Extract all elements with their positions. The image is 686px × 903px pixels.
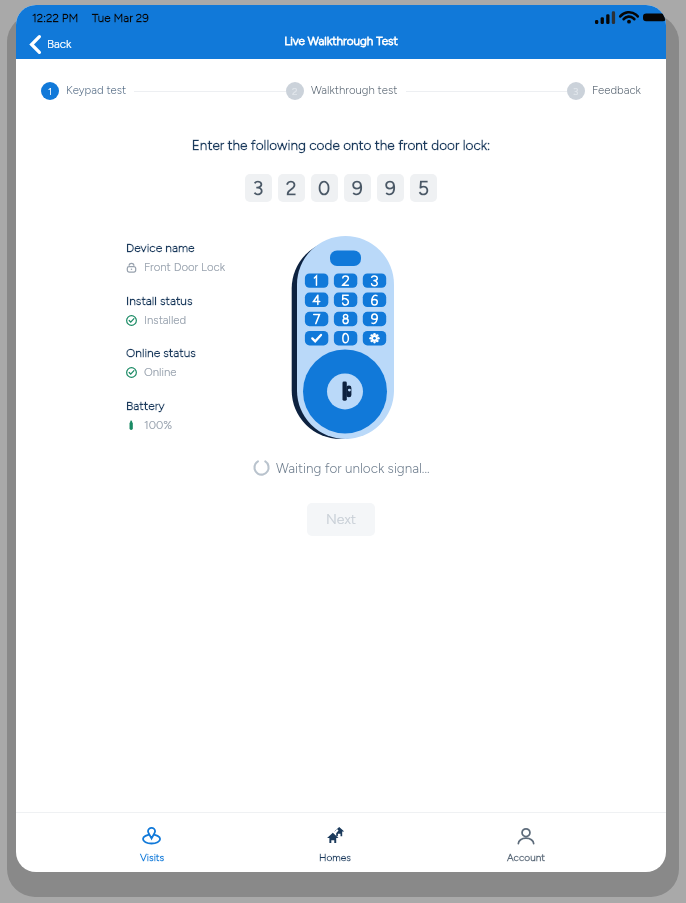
staticText: 3	[573, 85, 579, 97]
staticText: Front Door Lock	[144, 260, 225, 274]
staticText: Tue Mar 29	[92, 11, 149, 25]
staticText: Back	[47, 37, 72, 51]
button[interactable]: 2	[286, 79, 399, 100]
button[interactable]: Account	[496, 813, 556, 872]
staticText: Installed	[144, 313, 187, 327]
staticText: Device name	[126, 241, 195, 255]
staticText: Next	[326, 511, 356, 528]
button[interactable]: 3	[567, 79, 643, 100]
staticText: 9	[352, 177, 363, 200]
staticText: Online status	[126, 346, 196, 360]
staticText: 100%	[144, 418, 173, 432]
staticText: Enter the following code onto the front …	[16, 137, 666, 153]
staticText: 2	[292, 85, 298, 97]
staticText: 0	[318, 177, 331, 200]
staticText: Waiting for unlock signal...	[276, 460, 430, 476]
staticText: 2	[286, 177, 297, 200]
staticText: Walkthrough test	[311, 83, 398, 97]
staticText: Homes	[319, 851, 351, 863]
staticText: Battery	[126, 399, 165, 413]
staticText: Online	[144, 365, 177, 379]
staticText: 9	[385, 177, 396, 200]
button[interactable]: Back	[20, 30, 84, 58]
staticText: Visits	[140, 851, 165, 863]
staticText: Feedback	[592, 83, 641, 97]
staticText: Keypad test	[66, 83, 127, 97]
staticText: Install status	[126, 294, 193, 308]
staticText: 5	[418, 177, 429, 200]
other: Status icons	[595, 11, 652, 24]
button[interactable]: Visits	[122, 813, 182, 872]
staticText: 12:22 PM	[32, 11, 79, 25]
staticText: Live Walkthrough Test	[16, 34, 666, 48]
button[interactable]: Next	[307, 503, 375, 536]
button[interactable]: Homes	[305, 813, 365, 872]
staticText: Account	[507, 851, 545, 863]
button[interactable]: 1	[41, 79, 126, 100]
staticText: 3	[253, 177, 264, 200]
staticText: 1	[48, 85, 53, 97]
